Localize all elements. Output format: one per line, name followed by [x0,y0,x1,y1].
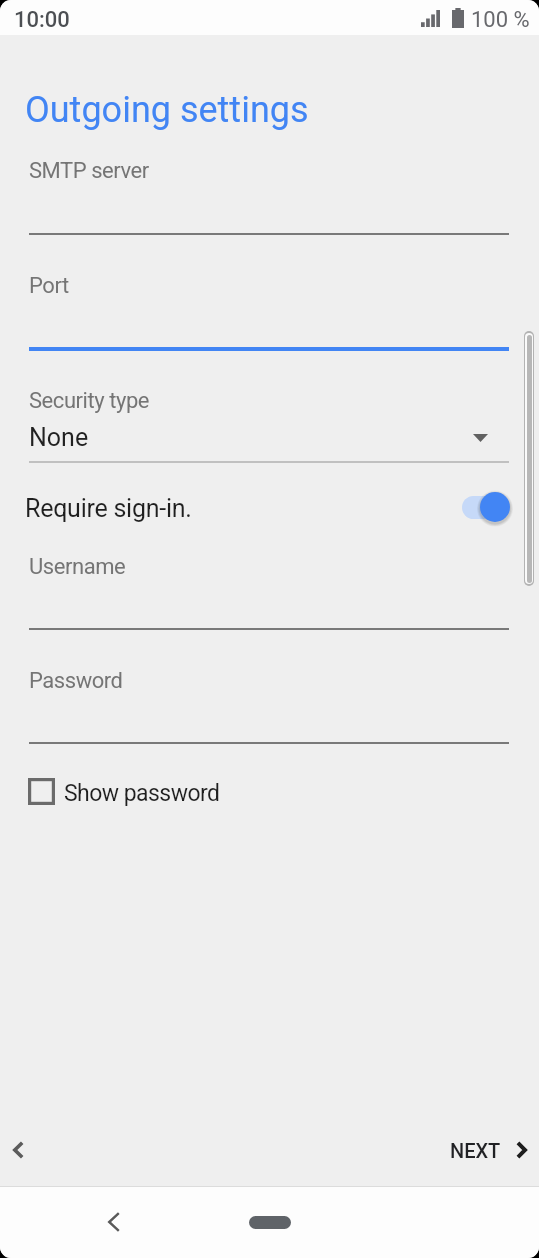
button[interactable]: Security type [29,382,509,463]
staticText: 10:00 [14,7,70,33]
button[interactable]: Port [29,267,509,351]
button[interactable]: Username [29,548,509,630]
button[interactable]: SMTP server [29,152,509,235]
button[interactable]: NEXT [450,1114,539,1186]
staticText: Require sign-in. [25,494,516,523]
staticText: SMTP server [29,158,149,184]
button[interactable]: Password [29,662,509,744]
staticText: NEXT [450,1139,501,1162]
button[interactable]: Back [90,1201,134,1245]
staticText: Security type [29,388,150,414]
staticText: Show password [64,780,220,807]
button[interactable]: Require sign-in. [0,486,539,528]
button[interactable]: Home [249,1216,291,1229]
staticText: None [29,423,89,452]
staticText: Port [29,273,69,299]
button[interactable]: Back [0,1114,44,1186]
staticText: Password [29,668,123,694]
button[interactable]: Show password [0,770,220,812]
staticText: Outgoing settings [25,89,309,131]
staticText: Username [29,554,126,580]
staticText: 100 % [471,7,530,33]
